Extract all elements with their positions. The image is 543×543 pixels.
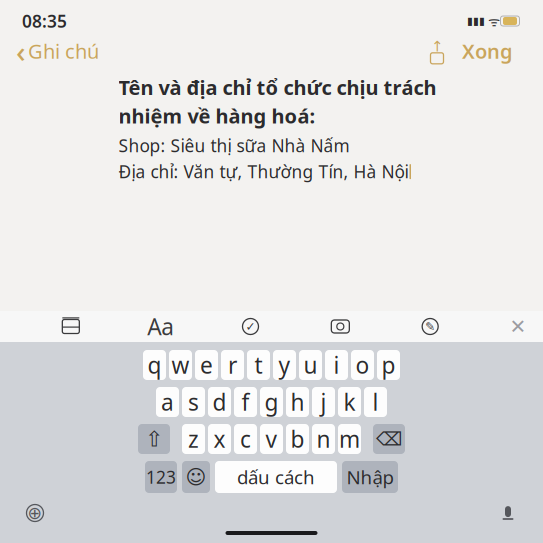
button[interactable]: j <box>312 387 335 417</box>
button[interactable]: Emoji <box>182 461 210 493</box>
button[interactable]: n <box>312 424 335 454</box>
button[interactable]: Table <box>52 311 90 341</box>
button[interactable]: f <box>234 387 257 417</box>
button[interactable]: s <box>182 387 205 417</box>
button[interactable]: z <box>182 424 205 454</box>
button[interactable]: w <box>169 350 192 380</box>
staticText: x <box>213 424 225 454</box>
staticText: p <box>381 350 395 380</box>
staticText: h <box>290 387 304 417</box>
staticText: ✎ <box>425 320 435 333</box>
staticText: g <box>264 387 278 417</box>
staticText: d <box>212 387 226 417</box>
button[interactable]: y <box>273 350 296 380</box>
staticText: j <box>320 387 326 417</box>
button[interactable]: Change keyboard <box>18 499 52 527</box>
staticText: k <box>343 387 355 417</box>
button[interactable]: ‹ <box>8 27 99 74</box>
staticText: n <box>316 424 330 454</box>
staticText: i <box>333 350 339 380</box>
staticText: ⊕ <box>27 503 42 523</box>
button[interactable]: t <box>247 350 270 380</box>
button[interactable]: d <box>208 387 231 417</box>
button[interactable]: h <box>286 387 309 417</box>
staticText: s <box>188 387 199 417</box>
staticText: Địa chỉ: Văn tự, Thường Tín, Hà Nội <box>118 160 408 183</box>
button[interactable]: i <box>325 350 348 380</box>
staticText: 08:35 <box>22 9 67 32</box>
staticText: w <box>171 350 189 380</box>
button[interactable]: g <box>260 387 283 417</box>
staticText: f <box>241 387 249 417</box>
button[interactable]: x <box>208 424 231 454</box>
staticText: r <box>228 350 237 380</box>
button[interactable]: m <box>338 424 361 454</box>
staticText: q <box>147 350 161 380</box>
staticText: Aa <box>147 311 174 341</box>
button[interactable]: l <box>364 387 387 417</box>
button[interactable]: q <box>143 350 166 380</box>
staticText: z <box>188 424 199 454</box>
button[interactable]: Share <box>422 37 452 65</box>
staticText: m <box>339 424 360 454</box>
button[interactable]: Checklist <box>231 311 269 341</box>
button[interactable]: Delete <box>373 424 405 454</box>
button[interactable]: Dictate <box>491 499 525 527</box>
staticText: ‹ <box>16 31 26 70</box>
staticText: Ghi chú <box>28 38 99 64</box>
button[interactable]: 123 <box>145 461 177 493</box>
button[interactable]: b <box>286 424 309 454</box>
staticText: e <box>200 350 213 380</box>
staticText: v <box>265 424 277 454</box>
staticText: ⌫ <box>376 428 402 450</box>
staticText: 123 <box>146 465 176 488</box>
button[interactable]: e <box>195 350 218 380</box>
button[interactable]: Shift <box>138 424 170 454</box>
staticText: Xong <box>462 38 513 64</box>
staticText: ✓ <box>245 320 255 333</box>
staticText: Tên và địa chỉ tổ chức chịu trách <box>118 74 436 101</box>
staticText: ☺ <box>185 466 206 488</box>
staticText: ⇧ <box>145 427 163 451</box>
staticText: c <box>240 424 251 454</box>
staticText: o <box>355 350 369 380</box>
button[interactable]: k <box>338 387 361 417</box>
staticText: ✕ <box>509 315 526 338</box>
button[interactable]: Markup <box>411 311 449 341</box>
button[interactable]: Xong <box>452 34 523 68</box>
button[interactable]: p <box>377 350 400 380</box>
button[interactable]: Close <box>501 311 535 341</box>
button[interactable]: dấu cách <box>215 461 337 493</box>
staticText: Nhập <box>346 465 393 489</box>
button[interactable]: u <box>299 350 322 380</box>
button[interactable]: v <box>260 424 283 454</box>
button[interactable]: r <box>221 350 244 380</box>
staticText: ▮▮▮ <box>467 15 485 27</box>
staticText: Shop: Siêu thị sữa Nhà Nấm <box>118 134 349 157</box>
staticText: l <box>372 387 378 417</box>
staticText: t <box>254 350 262 380</box>
button[interactable]: c <box>234 424 257 454</box>
button[interactable]: Format <box>142 311 180 341</box>
staticText: y <box>278 350 290 380</box>
staticText: dấu cách <box>237 465 315 489</box>
staticText: ᯤ <box>485 12 503 30</box>
staticText: u <box>303 350 317 380</box>
staticText: a <box>161 387 174 417</box>
staticText: b <box>290 424 304 454</box>
button[interactable]: Nhập <box>342 461 398 493</box>
button[interactable]: a <box>156 387 179 417</box>
staticText: ↑ <box>431 38 443 55</box>
button[interactable]: Camera <box>321 311 359 341</box>
button[interactable]: o <box>351 350 374 380</box>
staticText: nhiệm về hàng hoá: <box>118 103 315 129</box>
